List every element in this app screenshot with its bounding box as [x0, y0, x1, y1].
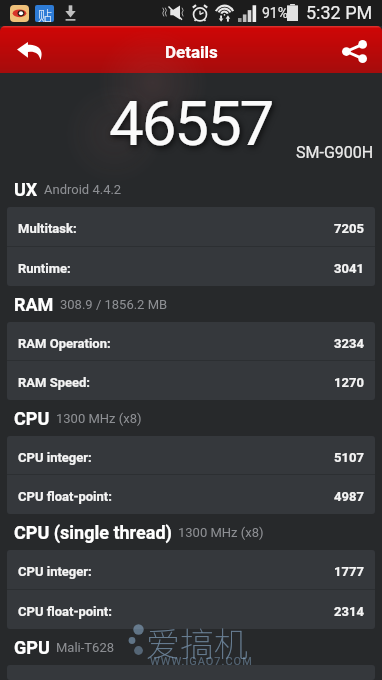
staticText: 1300 MHz (x8) [56, 411, 142, 426]
staticText: GPU [14, 637, 50, 658]
staticText: 7205 [334, 221, 364, 236]
button[interactable]: CPU integer: [7, 550, 375, 589]
button[interactable]: Share [326, 26, 382, 73]
button[interactable]: Back [0, 26, 57, 73]
staticText: CPU integer: [18, 450, 92, 465]
button[interactable]: CPU integer: [7, 436, 375, 474]
staticText: CPU float-point: [18, 489, 112, 504]
staticText: Multitask: [18, 221, 77, 236]
staticText: 46557 [109, 87, 273, 160]
staticText: CPU [14, 408, 50, 429]
staticText: Details [165, 42, 218, 62]
staticText: 贴 [38, 5, 52, 22]
button[interactable]: CPU float-point: [7, 475, 375, 514]
staticText: SM-G900H [296, 143, 374, 162]
staticText: 1270 [334, 375, 364, 390]
staticText: RAM Operation: [18, 336, 111, 351]
staticText: 1777 [334, 564, 364, 579]
staticText: RAM Speed: [18, 375, 91, 390]
staticText: CPU (single thread) [14, 522, 172, 543]
staticText: CPU integer: [18, 564, 92, 579]
staticText: 5:32 PM [306, 2, 373, 23]
staticText: 2314 [334, 604, 364, 619]
staticText: 爱搞机 [146, 618, 248, 667]
button[interactable]: Runtime: [7, 247, 375, 286]
staticText: Mali-T628 [56, 640, 115, 655]
staticText: WWW.iGAO7.COM [150, 655, 253, 668]
staticText: 5107 [334, 450, 364, 465]
staticText: UX [14, 179, 38, 200]
button[interactable]: CPU float-point: [7, 590, 375, 629]
staticText: 308.9 / 1856.2 MB [60, 297, 168, 312]
button[interactable]: RAM Operation: [7, 322, 375, 360]
staticText: RAM [14, 294, 54, 315]
staticText: 4987 [334, 489, 364, 504]
staticText: 1300 MHz (x8) [178, 525, 264, 540]
button[interactable]: Multitask: [7, 207, 375, 246]
staticText: CPU float-point: [18, 604, 112, 619]
button[interactable]: RAM Speed: [7, 361, 375, 400]
staticText: 3041 [334, 261, 364, 276]
staticText: Android 4.4.2 [44, 182, 122, 197]
staticText: 3234 [334, 336, 364, 351]
staticText: 91% [262, 5, 288, 21]
staticText: Runtime: [18, 261, 71, 276]
